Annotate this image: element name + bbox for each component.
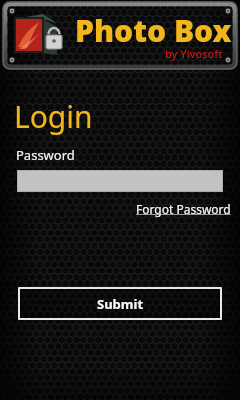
button[interactable]: Submit: [18, 287, 222, 320]
button[interactable]: Forgot Password: [134, 199, 233, 219]
staticText: Photo Box: [75, 10, 232, 51]
staticText: Submit: [97, 295, 144, 313]
staticText: Login: [14, 96, 93, 137]
staticText: Password: [16, 146, 75, 164]
button[interactable]: Password field: [17, 170, 223, 192]
staticText: by Yivosoft: [165, 46, 223, 61]
staticText: Forgot Password: [136, 201, 231, 217]
